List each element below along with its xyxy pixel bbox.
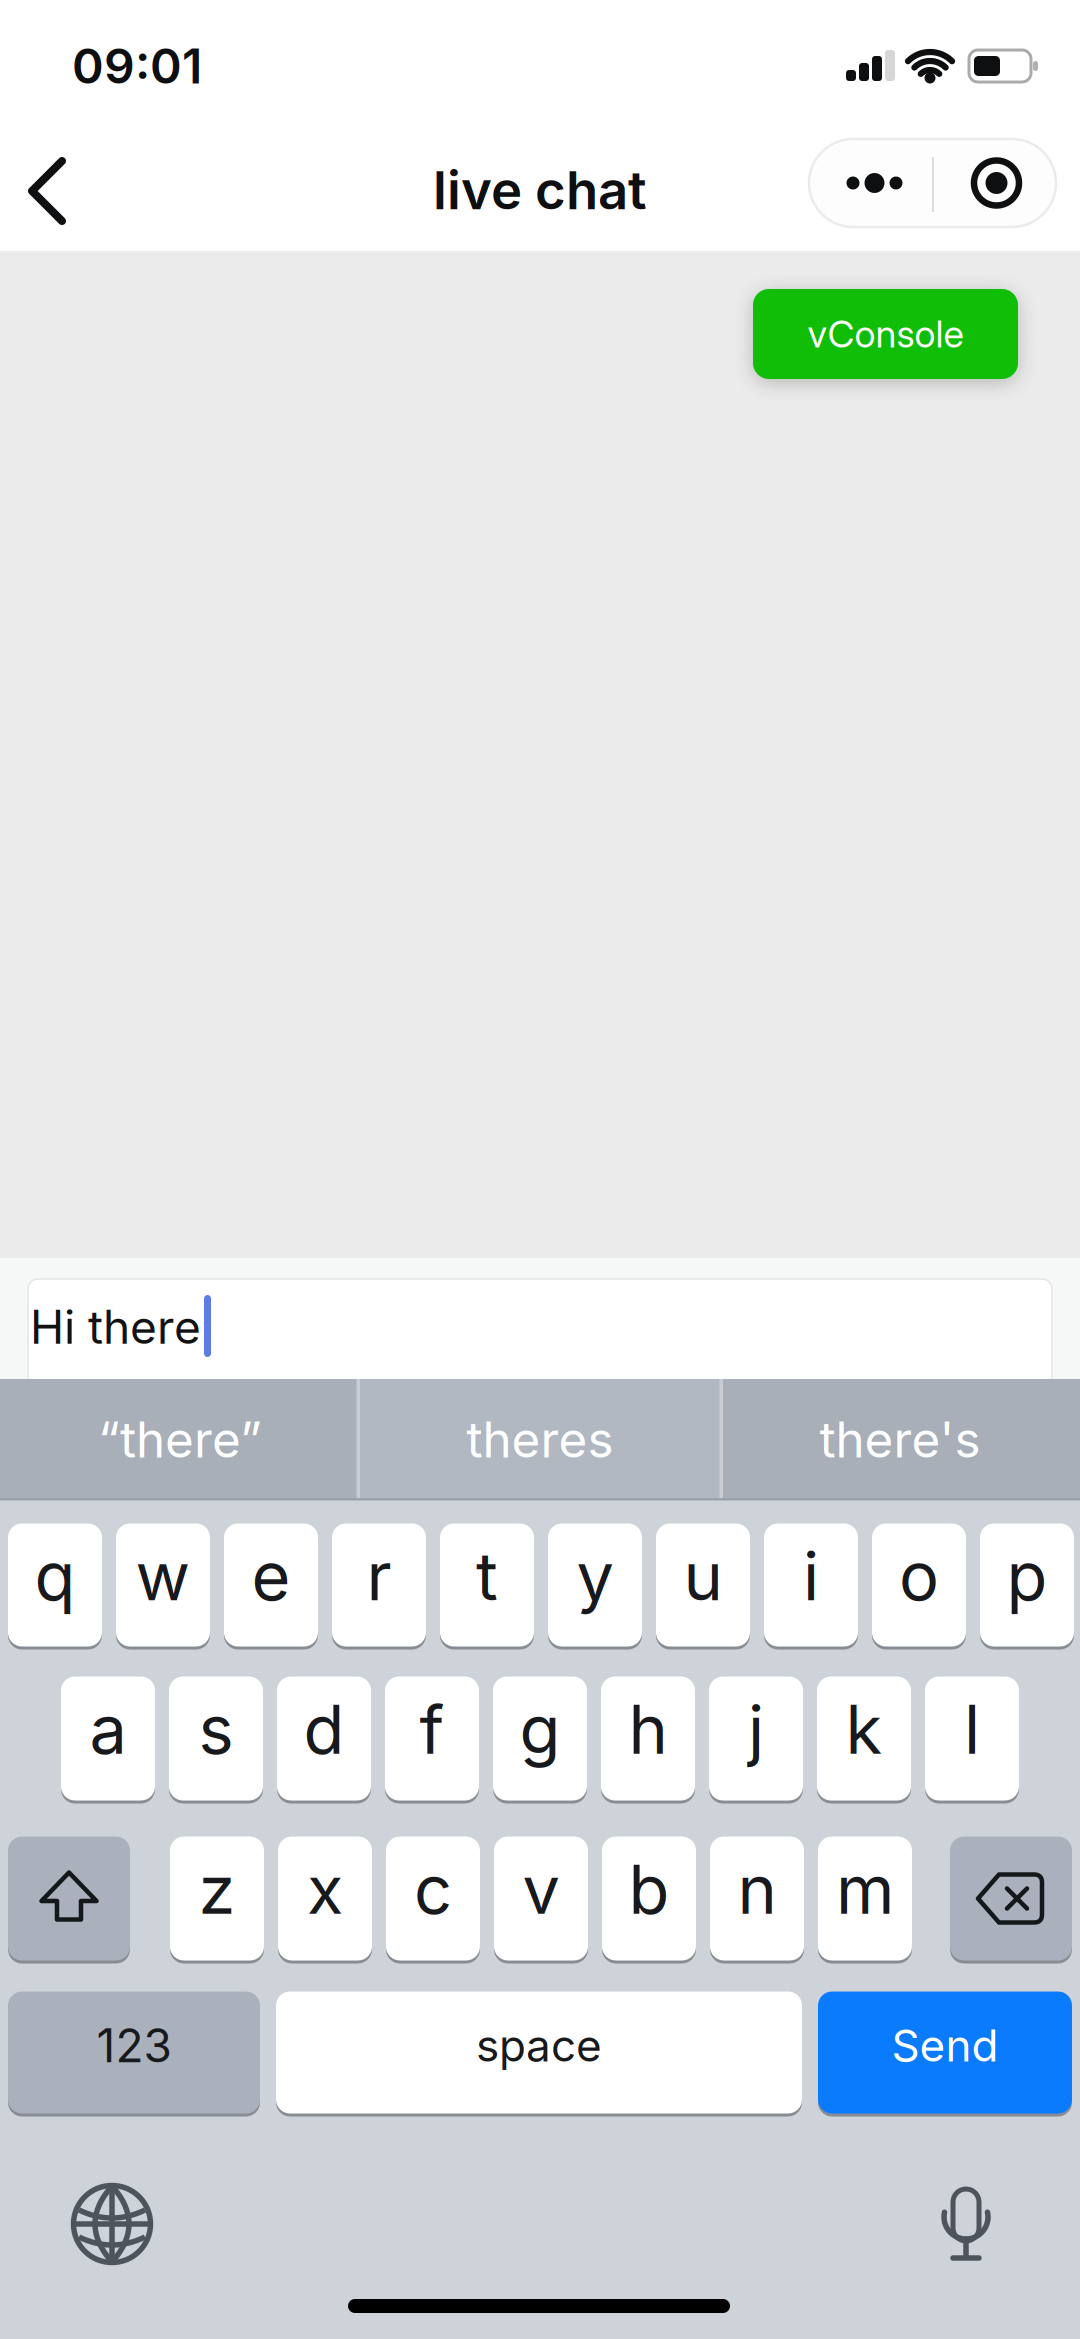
staticText: l: [964, 1689, 980, 1770]
staticText: b: [628, 1849, 669, 1930]
button[interactable]: o: [872, 1522, 966, 1648]
button[interactable]: f: [385, 1675, 479, 1802]
button[interactable]: x: [278, 1835, 372, 1962]
button[interactable]: Message input: [28, 1279, 1052, 1389]
button[interactable]: space: [276, 1990, 802, 2115]
button[interactable]: t: [440, 1522, 534, 1648]
button[interactable]: e: [224, 1522, 318, 1648]
button[interactable]: z: [170, 1835, 264, 1962]
staticText: space: [476, 2019, 602, 2072]
staticText: z: [198, 1849, 235, 1930]
button[interactable]: Shift: [8, 1835, 130, 1962]
button[interactable]: a: [61, 1675, 155, 1802]
button[interactable]: d: [277, 1675, 371, 1802]
button[interactable]: l: [925, 1675, 1019, 1802]
staticText: u: [683, 1536, 722, 1616]
staticText: h: [628, 1689, 667, 1770]
button[interactable]: s: [169, 1675, 263, 1802]
staticText: a: [89, 1689, 126, 1770]
staticText: w: [135, 1536, 190, 1616]
staticText: m: [836, 1849, 894, 1930]
button[interactable]: k: [817, 1675, 911, 1802]
staticText: there's: [819, 1410, 980, 1469]
button[interactable]: h: [601, 1675, 695, 1802]
button[interactable]: theres: [362, 1379, 718, 1500]
button[interactable]: Next keyboard: [62, 2174, 162, 2274]
button[interactable]: q: [8, 1522, 102, 1648]
button[interactable]: w: [116, 1522, 210, 1648]
staticText: n: [737, 1849, 776, 1930]
staticText: f: [419, 1689, 444, 1770]
button[interactable]: Close: [935, 139, 1058, 227]
staticText: g: [519, 1689, 560, 1770]
staticText: q: [34, 1536, 75, 1616]
staticText: e: [251, 1536, 290, 1616]
button[interactable]: j: [709, 1675, 803, 1802]
button[interactable]: u: [656, 1522, 750, 1648]
staticText: t: [476, 1536, 498, 1616]
staticText: Send: [891, 2019, 998, 2072]
button[interactable]: 123: [8, 1990, 260, 2115]
staticText: live chat: [433, 158, 647, 222]
button[interactable]: m: [818, 1835, 912, 1962]
staticText: Hi there: [30, 1299, 201, 1355]
button[interactable]: Delete: [950, 1835, 1072, 1962]
staticText: 09:01: [72, 37, 202, 95]
button[interactable]: “there”: [2, 1379, 358, 1500]
staticText: d: [303, 1689, 344, 1770]
button[interactable]: b: [602, 1835, 696, 1962]
staticText: theres: [466, 1410, 613, 1469]
button[interactable]: Send: [818, 1990, 1072, 2115]
button[interactable]: there's: [722, 1379, 1078, 1500]
staticText: i: [803, 1536, 819, 1616]
button[interactable]: c: [386, 1835, 480, 1962]
button[interactable]: y: [548, 1522, 642, 1648]
staticText: 123: [96, 2018, 171, 2073]
button[interactable]: p: [980, 1522, 1074, 1648]
button[interactable]: n: [710, 1835, 804, 1962]
staticText: r: [366, 1536, 391, 1616]
staticText: v: [522, 1849, 559, 1930]
staticText: p: [1006, 1536, 1047, 1616]
button[interactable]: Back: [0, 132, 100, 251]
button[interactable]: r: [332, 1522, 426, 1648]
staticText: k: [845, 1689, 882, 1770]
button[interactable]: Dictation: [921, 2160, 1011, 2270]
staticText: “there”: [98, 1410, 262, 1469]
staticText: y: [576, 1536, 613, 1616]
button[interactable]: vConsole: [753, 289, 1018, 379]
button[interactable]: v: [494, 1835, 588, 1962]
button[interactable]: g: [493, 1675, 587, 1802]
button[interactable]: More: [813, 139, 936, 227]
staticText: x: [307, 1849, 343, 1930]
staticText: c: [414, 1849, 452, 1930]
staticText: o: [899, 1536, 939, 1616]
staticText: vConsole: [807, 311, 963, 357]
staticText: j: [748, 1689, 764, 1770]
staticText: s: [198, 1689, 233, 1770]
button[interactable]: i: [764, 1522, 858, 1648]
